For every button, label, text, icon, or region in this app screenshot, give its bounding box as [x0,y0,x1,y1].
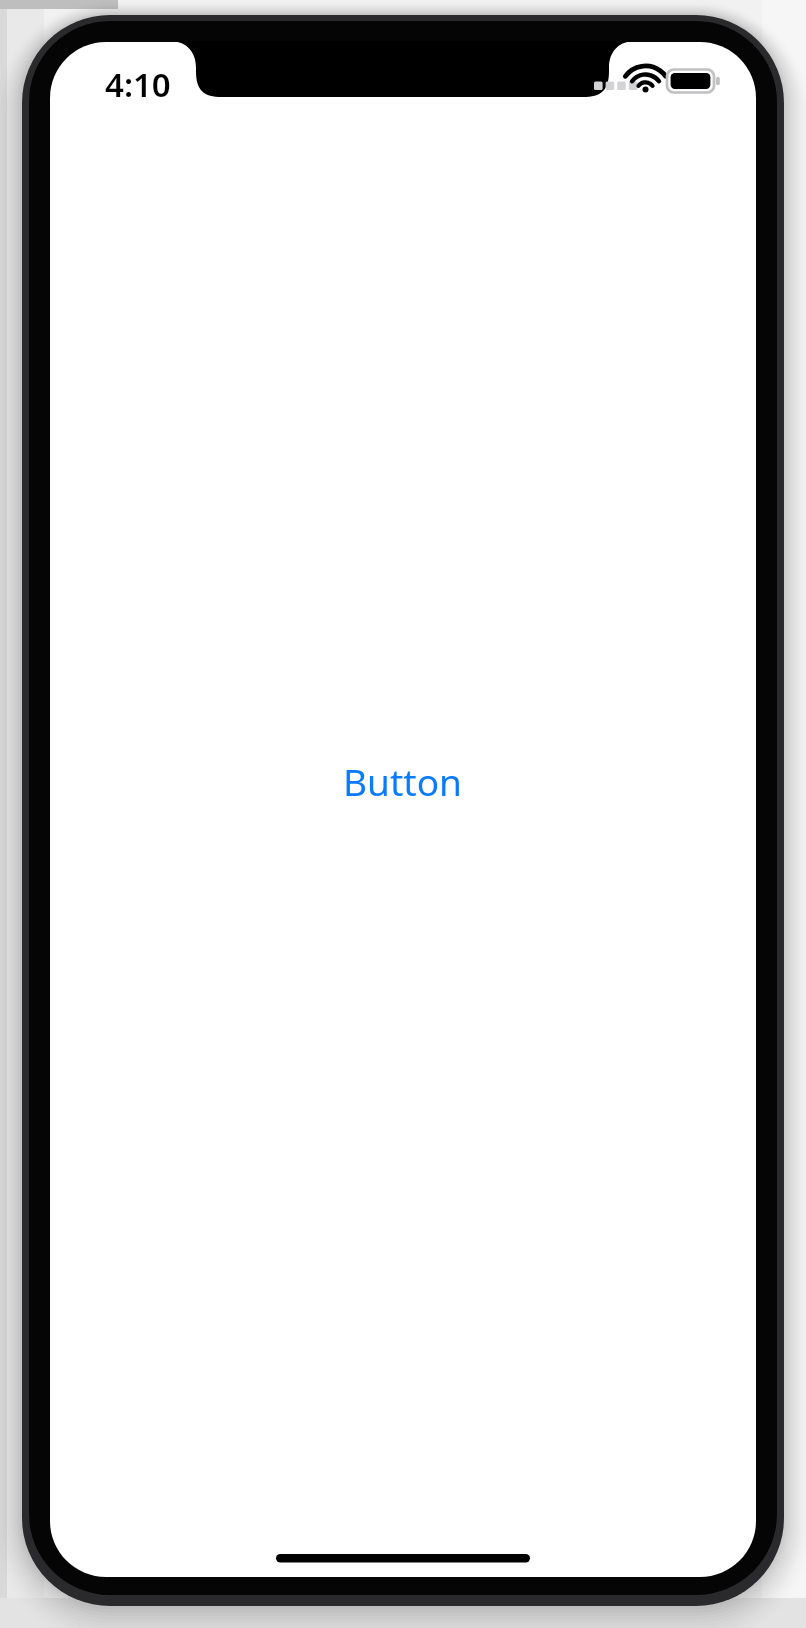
staticText: 4:10 [105,62,171,107]
staticText: Button [343,756,462,806]
button[interactable]: Button [343,756,462,806]
